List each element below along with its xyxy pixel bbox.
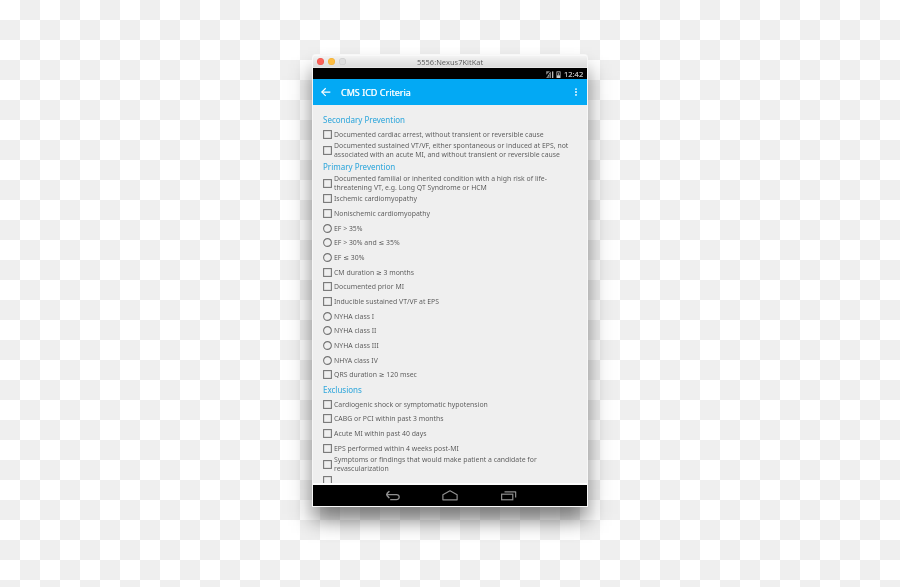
staticText: Acute MI within past 40 days bbox=[334, 429, 427, 438]
button[interactable]: EPS performed within 4 weeks post-MI bbox=[313, 441, 587, 456]
staticText: associated with an acute MI, and without… bbox=[334, 150, 560, 159]
staticText: EF ≤ 30% bbox=[334, 253, 365, 262]
button[interactable]: Nonischemic cardiomyopathy bbox=[313, 206, 587, 221]
button[interactable]: Recent apps bbox=[500, 486, 518, 504]
staticText: threatening VT, e.g. Long QT Syndrome or… bbox=[334, 183, 487, 192]
button[interactable] bbox=[313, 473, 587, 483]
button[interactable]: Acute MI within past 40 days bbox=[313, 426, 587, 441]
button[interactable]: Back bbox=[318, 85, 332, 99]
button[interactable]: NHYA class IV bbox=[313, 353, 587, 368]
staticText: Documented prior MI bbox=[334, 282, 405, 291]
button[interactable]: More options bbox=[570, 86, 582, 98]
button[interactable]: Back bbox=[383, 486, 401, 504]
staticText: Documented familial or inherited conditi… bbox=[334, 174, 547, 183]
button[interactable]: Cardiogenic shock or symptomatic hypoten… bbox=[313, 397, 587, 412]
staticText: QRS duration ≥ 120 msec bbox=[334, 370, 417, 379]
button[interactable]: EF > 30% and ≤ 35% bbox=[313, 235, 587, 250]
staticText: Nonischemic cardiomyopathy bbox=[334, 209, 431, 218]
staticText: Secondary Prevention bbox=[323, 114, 405, 125]
button[interactable]: NYHA class III bbox=[313, 338, 587, 353]
staticText: Symptoms or findings that would make pat… bbox=[334, 455, 537, 464]
staticText: NYHA class III bbox=[334, 341, 379, 350]
button[interactable]: Inducible sustained VT/VF at EPS bbox=[313, 294, 587, 309]
button[interactable]: Ischemic cardiomyopathy bbox=[313, 191, 587, 206]
button[interactable]: Symptoms or findings that would make pat… bbox=[313, 455, 587, 473]
staticText: Exclusions bbox=[323, 384, 362, 395]
button[interactable]: Documented cardiac arrest, without trans… bbox=[313, 127, 587, 142]
button[interactable]: EF ≤ 30% bbox=[313, 250, 587, 265]
staticText: revascularization bbox=[334, 464, 389, 473]
staticText: EF > 35% bbox=[334, 224, 363, 233]
staticText: NYHA class I bbox=[334, 312, 375, 321]
button[interactable]: NYHA class I bbox=[313, 309, 587, 324]
staticText: Documented sustained VT/VF, either spont… bbox=[334, 141, 569, 150]
staticText: Documented cardiac arrest, without trans… bbox=[334, 130, 544, 139]
staticText: CM duration ≥ 3 months bbox=[334, 268, 415, 277]
button[interactable]: Home bbox=[441, 486, 459, 504]
button[interactable]: Documented prior MI bbox=[313, 279, 587, 294]
staticText: NYHA class II bbox=[334, 326, 377, 335]
button[interactable]: Documented familial or inherited conditi… bbox=[313, 174, 587, 192]
staticText: CABG or PCI within past 3 months bbox=[334, 414, 444, 423]
staticText: 12:42 bbox=[564, 69, 584, 79]
staticText: Primary Prevention bbox=[323, 161, 396, 172]
button[interactable]: EF > 35% bbox=[313, 221, 587, 236]
staticText: Ischemic cardiomyopathy bbox=[334, 194, 417, 203]
staticText: EPS performed within 4 weeks post-MI bbox=[334, 444, 459, 453]
button[interactable]: QRS duration ≥ 120 msec bbox=[313, 367, 587, 382]
button[interactable]: CABG or PCI within past 3 months bbox=[313, 411, 587, 426]
button[interactable]: Documented sustained VT/VF, either spont… bbox=[313, 141, 587, 159]
staticText: Cardiogenic shock or symptomatic hypoten… bbox=[334, 400, 488, 409]
button[interactable]: CM duration ≥ 3 months bbox=[313, 265, 587, 280]
staticText: EF > 30% and ≤ 35% bbox=[334, 238, 400, 247]
staticText: CMS ICD Criteria bbox=[341, 86, 411, 98]
staticText: 5556:Nexus7KitKat bbox=[417, 57, 484, 67]
staticText: Inducible sustained VT/VF at EPS bbox=[334, 297, 439, 306]
button[interactable]: NYHA class II bbox=[313, 323, 587, 338]
staticText: NHYA class IV bbox=[334, 356, 378, 365]
